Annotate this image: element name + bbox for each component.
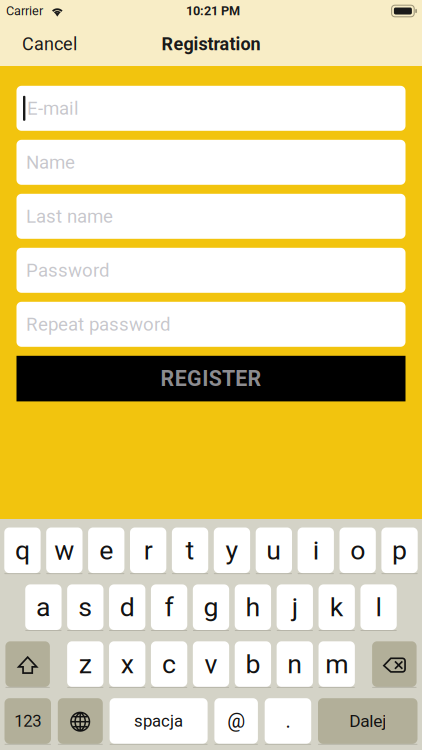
button[interactable]: k [318,584,355,630]
staticText: e [99,535,113,566]
staticText: t [185,535,194,566]
staticText: a [36,592,51,623]
button[interactable]: b [235,641,271,687]
staticText: c [162,648,176,680]
button[interactable]: h [235,584,271,630]
button[interactable]: z [67,641,103,687]
staticText: v [204,648,217,680]
button[interactable]: p [381,527,418,573]
staticText: REGISTER [160,366,262,391]
button[interactable]: a [25,584,61,630]
staticText: @ [227,709,245,733]
button[interactable]: r [130,527,166,573]
button[interactable]: y [214,527,250,573]
staticText: Carrier [6,4,43,18]
staticText: n [287,648,302,680]
button[interactable]: m [318,641,355,687]
staticText: h [245,592,260,623]
staticText: m [325,648,348,680]
staticText: x [121,648,134,680]
button[interactable]: . [265,698,311,744]
staticText: Name [26,151,75,173]
button[interactable]: 123 [4,698,51,744]
button[interactable]: Password [16,248,405,293]
staticText: Registration [161,33,260,55]
staticText: Last name [26,205,113,227]
staticText: y [225,535,238,566]
button[interactable]: n [277,641,313,687]
button[interactable]: x [109,641,145,687]
staticText: spacja [134,711,183,731]
button[interactable]: REGISTER [16,356,405,401]
staticText: r [144,535,153,566]
staticText: u [266,535,281,566]
staticText: l [376,592,382,623]
button[interactable]: Next keyboard [58,698,103,744]
button[interactable]: d [109,584,145,630]
button[interactable]: o [339,527,376,573]
button[interactable]: Delete [372,641,417,687]
button[interactable]: Repeat password [16,302,405,347]
button[interactable]: Dalej [318,698,417,744]
staticText: 10:21 PM [186,4,240,18]
button[interactable]: f [151,584,187,630]
staticText: s [78,592,92,623]
button[interactable]: u [256,527,292,573]
staticText: q [15,535,30,566]
staticText: E-mail [27,97,79,119]
staticText: o [350,535,365,566]
button[interactable]: Shift [5,641,50,687]
button[interactable]: c [151,641,187,687]
button[interactable]: e [88,527,124,573]
staticText: d [120,592,135,623]
button[interactable]: spacja [110,698,208,744]
staticText: . [285,709,290,733]
staticText: j [292,592,298,623]
staticText: b [245,648,260,680]
staticText: Password [26,259,110,281]
button[interactable]: t [172,527,208,573]
button[interactable]: l [360,584,397,630]
button[interactable]: j [277,584,313,630]
staticText: 123 [14,711,41,731]
staticText: p [392,535,407,566]
button[interactable]: i [298,527,334,573]
button[interactable]: g [193,584,229,630]
button[interactable]: Name [16,140,405,185]
staticText: g [203,592,218,623]
button[interactable]: w [46,527,82,573]
button[interactable]: s [67,584,103,630]
staticText: i [313,535,319,566]
staticText: k [330,592,344,623]
staticText: z [79,648,92,680]
button[interactable]: @ [214,698,258,744]
button[interactable]: E-mail [16,86,405,131]
staticText: w [54,535,74,566]
button[interactable]: Cancel [14,24,85,64]
staticText: Repeat password [26,313,171,335]
button[interactable]: v [193,641,229,687]
staticText: Cancel [22,33,77,55]
staticText: f [165,592,174,623]
staticText: Dalej [349,711,386,731]
button[interactable]: Last name [16,194,405,239]
button[interactable]: q [4,527,41,573]
